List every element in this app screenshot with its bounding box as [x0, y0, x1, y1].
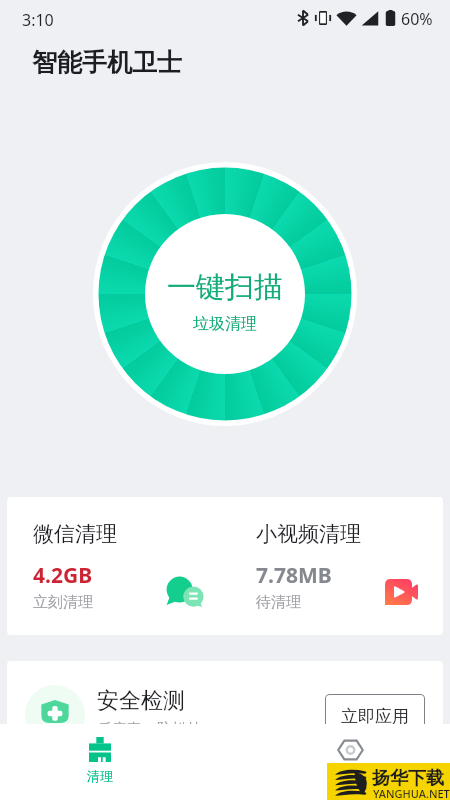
staticText: 微信清理 [33, 521, 117, 547]
staticText: 7.78MB [256, 561, 332, 590]
staticText: 小视频清理 [256, 521, 361, 547]
staticText: YANGHUA.NET [373, 786, 450, 800]
button[interactable]: 微信清理 [7, 497, 225, 635]
staticText: 工具 [337, 768, 363, 784]
staticText: 一键扫描 [167, 269, 283, 306]
button[interactable]: 一键扫描 [93, 162, 357, 426]
button[interactable]: 立即应用 [325, 694, 425, 738]
staticText: 垃圾清理 [193, 314, 257, 334]
staticText: 扬华下载 [372, 767, 444, 790]
staticText: 智能手机卫士 [32, 47, 182, 78]
staticText: 安全检测 [97, 687, 185, 715]
staticText: 立刻清理 [33, 593, 93, 612]
button[interactable]: 工具 [320, 739, 380, 784]
button[interactable]: 安全检测 [7, 661, 443, 771]
staticText: 待清理 [256, 593, 301, 612]
button[interactable]: 清理 [70, 737, 130, 784]
staticText: 60% [401, 8, 433, 30]
staticText: 3:10 [22, 9, 54, 31]
staticText: 4.2GB [33, 561, 93, 590]
staticText: 立即应用 [341, 706, 409, 727]
button[interactable]: 小视频清理 [225, 497, 443, 635]
staticText: 反病毒、防扒挂 [97, 720, 202, 739]
staticText: 清理 [87, 768, 113, 784]
